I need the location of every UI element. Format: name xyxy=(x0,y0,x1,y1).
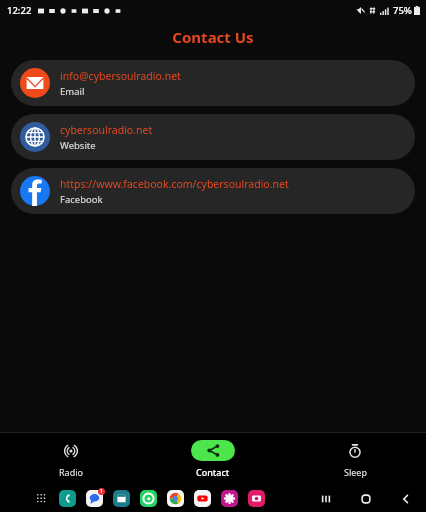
button[interactable]: info@cybersoulradio.net xyxy=(11,60,415,106)
button[interactable] xyxy=(194,490,211,507)
staticText: Contact xyxy=(196,466,230,478)
other: Recents xyxy=(320,493,332,505)
staticText: https://www.facebook.com/cybersoulradio.… xyxy=(60,177,289,191)
staticText: 1 xyxy=(100,488,103,495)
staticText: Website xyxy=(60,139,96,152)
staticText: Contact Us xyxy=(0,27,426,47)
other: Back xyxy=(400,493,412,505)
button[interactable] xyxy=(140,490,157,507)
button[interactable] xyxy=(248,490,265,507)
button[interactable]: https://www.facebook.com/cybersoulradio.… xyxy=(11,168,415,214)
other: Sleep xyxy=(348,444,362,458)
staticText: 12:22 xyxy=(7,4,32,17)
button[interactable] xyxy=(167,490,184,507)
staticText: 75% xyxy=(393,4,412,17)
button[interactable]: Sleep xyxy=(284,433,426,485)
other: Home xyxy=(360,493,372,505)
button[interactable] xyxy=(86,490,103,507)
staticText: Facebook xyxy=(60,193,103,206)
staticText: Radio xyxy=(59,466,83,478)
button[interactable]: cybersoulradio.net xyxy=(11,114,415,160)
other: Radio xyxy=(64,444,78,458)
other: Apps xyxy=(36,493,47,504)
button[interactable]: Radio xyxy=(0,433,142,485)
staticText: Sleep xyxy=(344,466,367,478)
staticText: Email xyxy=(60,85,85,98)
button[interactable] xyxy=(221,490,238,507)
other: Contact xyxy=(207,444,220,457)
button[interactable]: Contact xyxy=(142,433,284,485)
staticText: cybersoulradio.net xyxy=(60,123,153,137)
button[interactable] xyxy=(113,490,130,507)
button[interactable] xyxy=(59,490,76,507)
staticText: info@cybersoulradio.net xyxy=(60,69,181,83)
